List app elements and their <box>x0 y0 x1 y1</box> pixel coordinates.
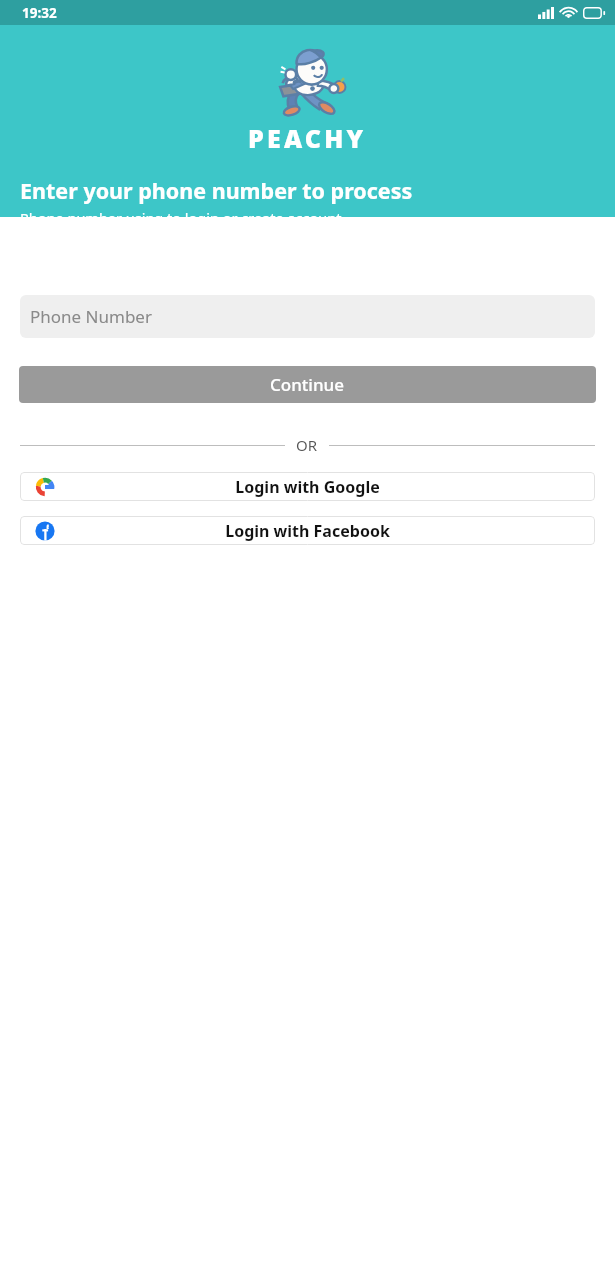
staticText: 19:32 <box>22 4 57 22</box>
other: Facebook <box>35 521 55 541</box>
button[interactable]: Phone Number <box>20 295 595 338</box>
staticText: Continue <box>270 373 345 396</box>
other: Google <box>35 477 55 497</box>
staticText: PEACHY <box>248 121 367 155</box>
staticText: Phone Number <box>30 305 152 328</box>
button[interactable]: Continue <box>19 366 596 403</box>
staticText: OR <box>296 435 318 455</box>
staticText: Enter your phone number to process <box>20 176 413 205</box>
button[interactable]: Facebook <box>20 516 595 545</box>
button[interactable]: Google <box>20 472 595 501</box>
staticText: Login with Facebook <box>225 520 390 542</box>
staticText: Login with Google <box>235 476 380 498</box>
staticText: Phone number using to login or create ac… <box>20 208 342 217</box>
